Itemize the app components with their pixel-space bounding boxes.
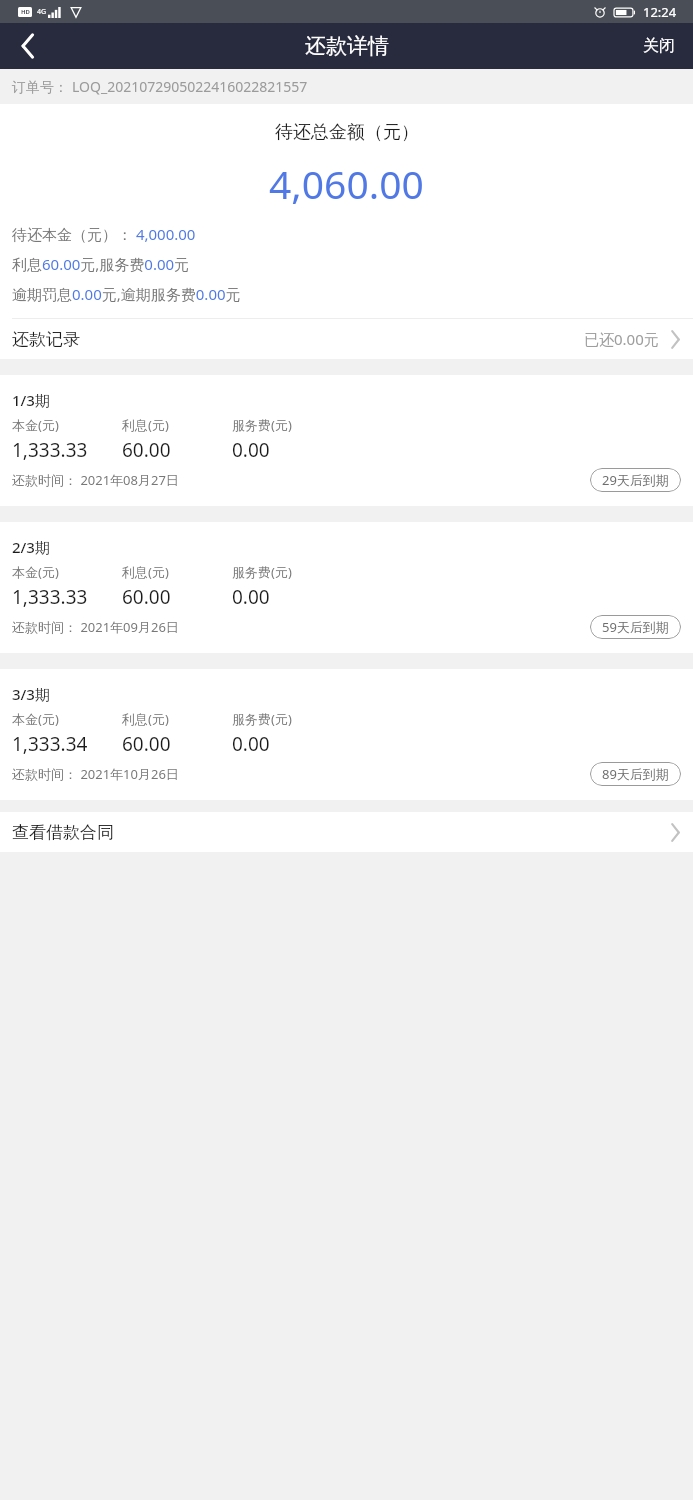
staticText: 待还总金额（元）: [275, 121, 419, 144]
staticText: 服务费(元): [232, 710, 292, 728]
button[interactable]: 2/3期: [0, 522, 693, 653]
staticText: 利息(元): [122, 563, 169, 581]
staticText: 待还本金（元）： 4,000.00: [12, 224, 196, 244]
button[interactable]: 还款记录: [0, 319, 693, 359]
staticText: 还款时间： 2021年09月26日: [12, 618, 179, 636]
staticText: 0.00: [232, 584, 270, 610]
staticText: 逾期罚息0.00元,逾期服务费0.00元: [12, 284, 241, 304]
staticText: LOQ_2021072905022416022821557: [72, 77, 308, 96]
staticText: 3/3期: [12, 684, 50, 704]
staticText: 本金(元): [12, 416, 59, 434]
staticText: 订单号：: [12, 77, 72, 96]
staticText: 利息60.00元,服务费0.00元: [12, 254, 190, 274]
staticText: 60.00: [122, 731, 171, 757]
staticText: 59天后到期: [602, 618, 669, 636]
staticText: 查看借款合同: [12, 822, 114, 843]
staticText: 60.00: [122, 584, 171, 610]
staticText: 60.00: [122, 437, 171, 463]
button[interactable]: 3/3期: [0, 669, 693, 800]
staticText: 还款时间： 2021年08月27日: [12, 471, 179, 489]
staticText: 4G: [37, 7, 47, 17]
staticText: 2/3期: [12, 537, 50, 557]
button[interactable]: 返回: [0, 23, 54, 69]
staticText: 1,333.34: [12, 731, 88, 757]
button[interactable]: 查看借款合同: [0, 812, 693, 852]
staticText: 0.00: [232, 731, 270, 757]
staticText: 已还0.00元: [584, 329, 659, 349]
staticText: 12:24: [643, 3, 677, 21]
staticText: 关闭: [643, 36, 675, 56]
staticText: 89天后到期: [602, 765, 669, 783]
staticText: 利息(元): [122, 416, 169, 434]
button[interactable]: 关闭: [625, 23, 693, 69]
staticText: 1,333.33: [12, 437, 88, 463]
staticText: 1/3期: [12, 390, 50, 410]
staticText: 还款时间： 2021年10月26日: [12, 765, 179, 783]
staticText: 0.00: [232, 437, 270, 463]
staticText: HD: [21, 8, 30, 16]
staticText: 服务费(元): [232, 563, 292, 581]
staticText: 4,060.00: [269, 157, 424, 210]
staticText: 服务费(元): [232, 416, 292, 434]
staticText: 29天后到期: [602, 471, 669, 489]
staticText: 本金(元): [12, 563, 59, 581]
staticText: 1,333.33: [12, 584, 88, 610]
staticText: 利息(元): [122, 710, 169, 728]
button[interactable]: 1/3期: [0, 375, 693, 506]
staticText: 还款记录: [12, 329, 80, 350]
staticText: 还款详情: [305, 33, 389, 59]
staticText: 本金(元): [12, 710, 59, 728]
